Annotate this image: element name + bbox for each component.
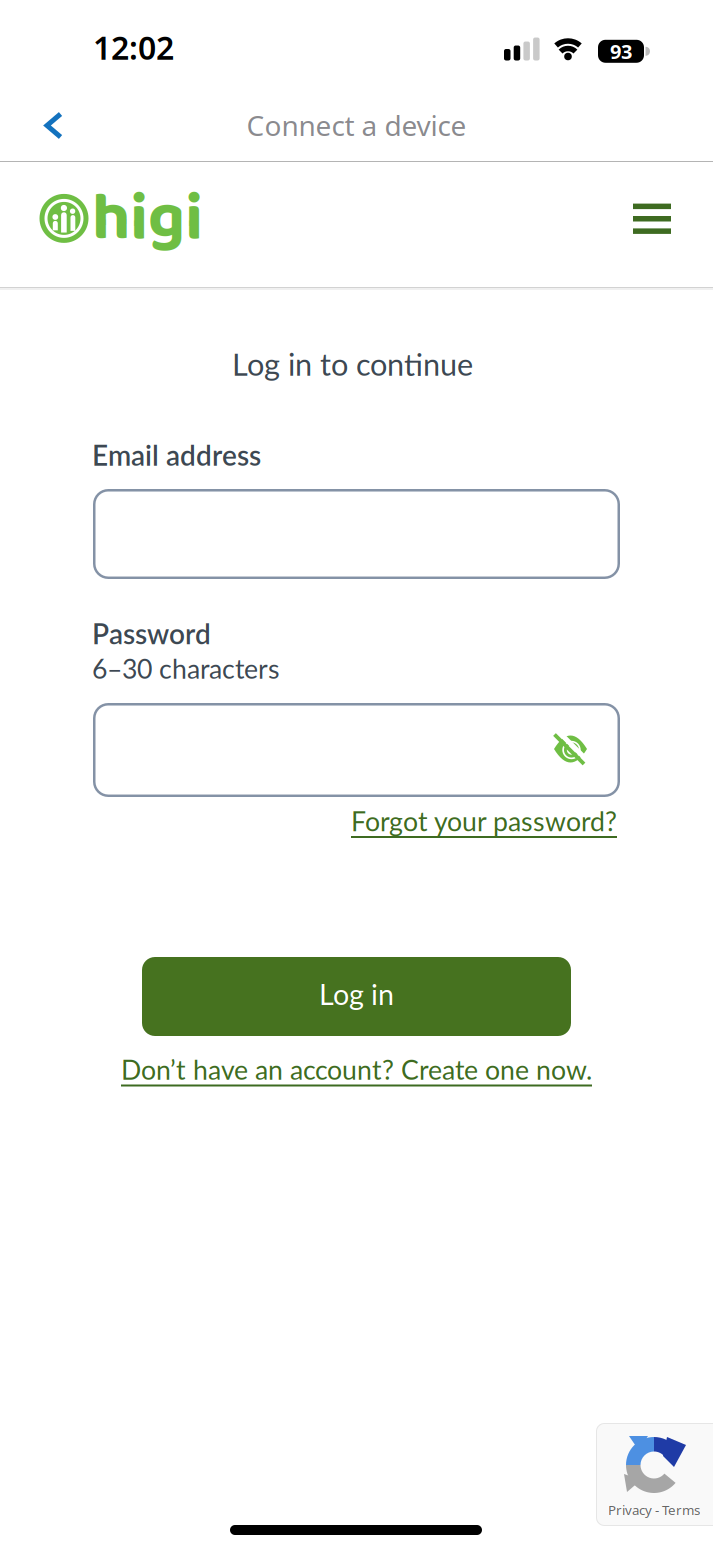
staticText: Privacy - Terms	[608, 1501, 700, 1519]
staticText: Log in to continue	[232, 345, 473, 382]
button[interactable]: Back	[44, 111, 64, 139]
button[interactable]: Show password	[551, 730, 588, 767]
staticText: Email address	[92, 438, 261, 472]
staticText: Log in	[319, 977, 394, 1011]
staticText: 6–30 characters	[92, 652, 280, 684]
staticText: Connect a device	[246, 106, 466, 144]
staticText: higi	[92, 166, 203, 273]
staticText: 12:02	[93, 26, 174, 68]
button[interactable]: Forgot your password?	[351, 805, 617, 838]
button[interactable]: Log in	[142, 957, 571, 1036]
button[interactable]: Don’t have an account? Create one now.	[121, 1053, 592, 1086]
staticText: Forgot your password?	[351, 805, 617, 837]
staticText: Password	[92, 616, 211, 650]
staticText: Don’t have an account? Create one now.	[121, 1053, 592, 1085]
button[interactable]: Menu	[633, 204, 671, 234]
button[interactable]: higi home	[0, 162, 203, 273]
staticText: 93	[610, 38, 632, 65]
